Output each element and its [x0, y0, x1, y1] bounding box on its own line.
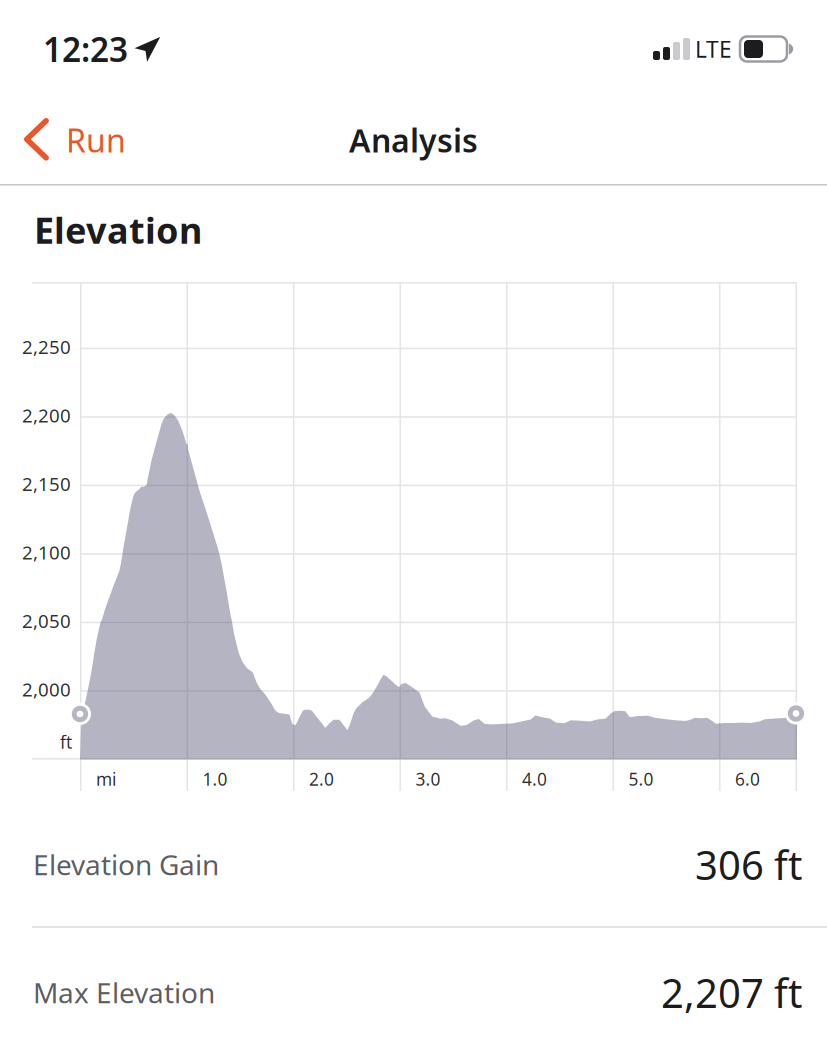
staticText: Elevation [34, 206, 202, 254]
staticText: 6.0 [735, 767, 760, 790]
staticText: Analysis [349, 119, 478, 161]
staticText: 3.0 [415, 767, 440, 790]
staticText: ft [60, 730, 72, 753]
staticText: 2.0 [309, 767, 334, 790]
staticText: 4.0 [522, 767, 547, 790]
staticText: Elevation Gain [33, 846, 219, 883]
staticText: mi [96, 767, 116, 790]
staticText: 2,207 ft [661, 966, 802, 1019]
button[interactable]: Run [0, 96, 136, 184]
staticText: 2,000 [22, 677, 71, 702]
staticText: LTE [695, 34, 732, 64]
staticText: 2,100 [22, 540, 71, 565]
staticText: 2,250 [22, 334, 71, 359]
staticText: Run [66, 119, 126, 161]
staticText: Max Elevation [33, 974, 215, 1011]
staticText: 12:23 [43, 27, 128, 71]
staticText: 2,050 [22, 608, 71, 633]
button[interactable]: Elevation Gain [0, 808, 827, 921]
staticText: 1.0 [202, 767, 227, 790]
staticText: 5.0 [628, 767, 653, 790]
button[interactable]: Max Elevation [0, 936, 827, 1049]
staticText: 306 ft [695, 838, 802, 891]
staticText: 2,150 [22, 471, 71, 496]
staticText: 2,200 [22, 403, 71, 428]
